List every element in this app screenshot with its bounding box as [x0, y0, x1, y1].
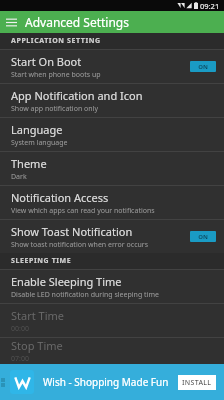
staticText: Start Time [11, 308, 64, 323]
button[interactable]: INSTALL [178, 375, 216, 390]
button[interactable]: Toggle on [190, 231, 216, 242]
button[interactable]: Notification Access [0, 186, 224, 219]
staticText: ON [198, 63, 208, 71]
staticText: 00:00 [11, 324, 29, 334]
button[interactable]: Enable Sleeping Time [0, 270, 224, 303]
button[interactable]: Theme [0, 152, 224, 185]
staticText: Show Toast Notification [11, 224, 133, 239]
staticText: Advanced Settings [25, 14, 129, 30]
staticText: Notification Access [11, 190, 109, 205]
staticText: View which apps can read your notificati… [11, 206, 155, 216]
staticText: Show app notification only [11, 104, 98, 114]
button[interactable]: Start Time [0, 304, 224, 337]
staticText: Theme [11, 156, 47, 171]
button[interactable]: Stop Time [0, 338, 224, 364]
staticText: Show toast notification when error occur… [11, 240, 149, 250]
button[interactable]: Show Toast Notification [0, 220, 224, 253]
staticText: Dark [11, 172, 27, 182]
staticText: 07:00 [11, 354, 29, 364]
staticText: System language [11, 138, 68, 148]
staticText: APPLICATION SETTING [11, 36, 101, 46]
staticText: Stop Time [11, 338, 63, 353]
button[interactable]: Wish - Shopping Made Fun [0, 364, 224, 400]
staticText: 09:21 [200, 1, 220, 11]
staticText: App Notification and Icon [11, 88, 143, 103]
staticText: Start when phone boots up [11, 70, 101, 80]
staticText: Wish - Shopping Made Fun [43, 375, 169, 389]
button[interactable]: Start On Boot [0, 50, 224, 83]
staticText: Language [11, 122, 63, 137]
staticText: SLEEPING TIME [11, 256, 72, 266]
staticText: Disable LED notification during sleeping… [11, 290, 159, 300]
staticText: ON [198, 233, 208, 241]
button[interactable]: Toggle on [190, 61, 216, 72]
staticText: Start On Boot [11, 54, 82, 69]
staticText: INSTALL [182, 378, 212, 388]
staticText: Enable Sleeping Time [11, 274, 122, 289]
button[interactable]: App Notification and Icon [0, 84, 224, 117]
button[interactable]: Open navigation menu [0, 11, 22, 33]
button[interactable]: Language [0, 118, 224, 151]
